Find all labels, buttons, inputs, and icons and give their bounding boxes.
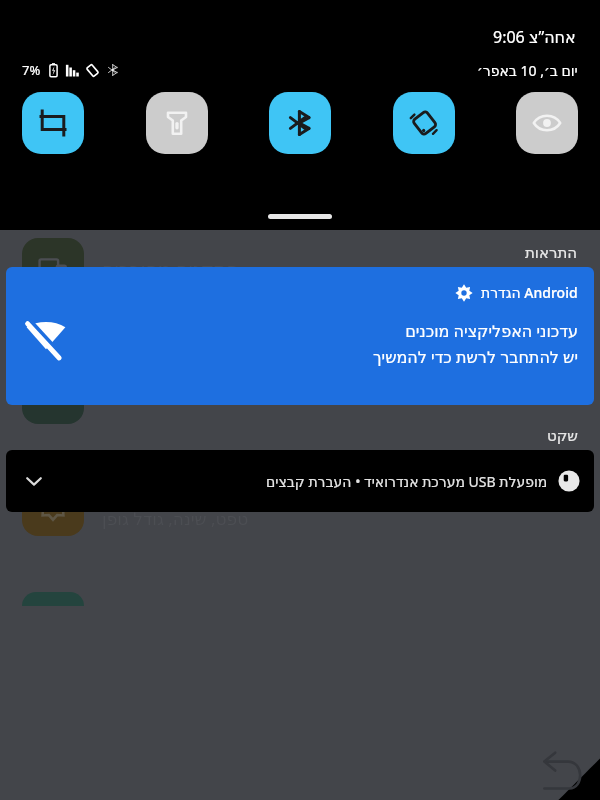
button[interactable]: Expand <box>20 467 48 495</box>
staticText: התקנים מחוברים <box>102 256 239 282</box>
staticText: מערכת אנדרואיד • העברת קבצים USB מופעלת <box>266 472 548 491</box>
button[interactable]: Auto rotate <box>393 92 455 154</box>
button[interactable] <box>268 214 332 219</box>
staticText: יום ב׳, 10 באפר׳ <box>477 61 578 80</box>
button[interactable]: הגדרת Android <box>6 267 594 405</box>
staticText: הגדרת Android <box>481 283 578 302</box>
staticText: עדכוני האפליקציה מוכנים <box>405 320 578 342</box>
button[interactable]: Bluetooth <box>269 92 331 154</box>
staticText: 9:06 אחה”צ <box>493 26 576 48</box>
button[interactable]: Expand <box>6 450 594 512</box>
staticText: שקט <box>547 427 578 444</box>
staticText: 7% <box>22 61 41 79</box>
button[interactable]: Screenshot <box>22 92 84 154</box>
staticText: טפט, שינה, גודל גופן <box>102 507 249 530</box>
button[interactable]: Flashlight <box>146 92 208 154</box>
staticText: יש להתחבר לרשת כדי להמשיך <box>372 346 578 368</box>
button[interactable]: Screen attention <box>516 92 578 154</box>
button[interactable]: Back <box>536 736 600 800</box>
staticText: התראות <box>525 244 578 261</box>
